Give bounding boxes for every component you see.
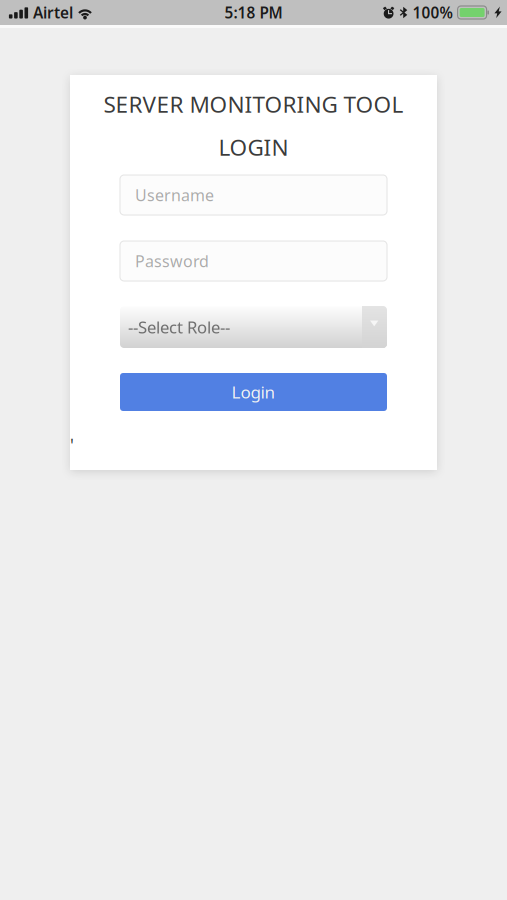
staticText: LOGIN — [218, 132, 288, 162]
staticText: --Select Role-- — [128, 316, 230, 338]
staticText: SERVER MONITORING TOOL — [103, 89, 403, 119]
staticText: Username — [135, 184, 214, 206]
staticText: Login — [231, 380, 275, 404]
staticText: ' — [70, 433, 74, 457]
staticText: Airtel — [33, 2, 73, 23]
staticText: 100% — [413, 2, 453, 23]
button[interactable]: Login — [120, 373, 387, 411]
staticText: Password — [135, 250, 209, 272]
staticText: 5:18 PM — [224, 2, 282, 23]
